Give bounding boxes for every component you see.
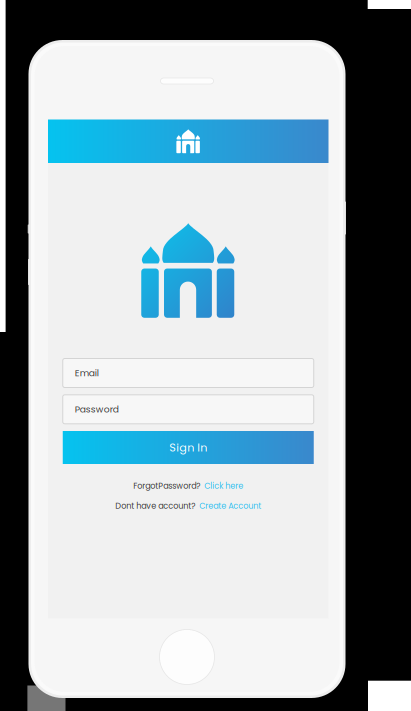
staticText: Create Account: [199, 500, 261, 512]
staticText: ForgotPassword?: [133, 480, 200, 492]
button[interactable]: Sign In: [63, 431, 314, 464]
button[interactable]: Create Account: [199, 500, 261, 512]
staticText: Dont have account?: [115, 500, 195, 512]
staticText: Email: [75, 367, 99, 379]
staticText: Password: [75, 403, 119, 416]
staticText: Sign In: [169, 440, 207, 455]
button[interactable]: Click here: [204, 480, 243, 492]
staticText: Click here: [204, 480, 243, 492]
